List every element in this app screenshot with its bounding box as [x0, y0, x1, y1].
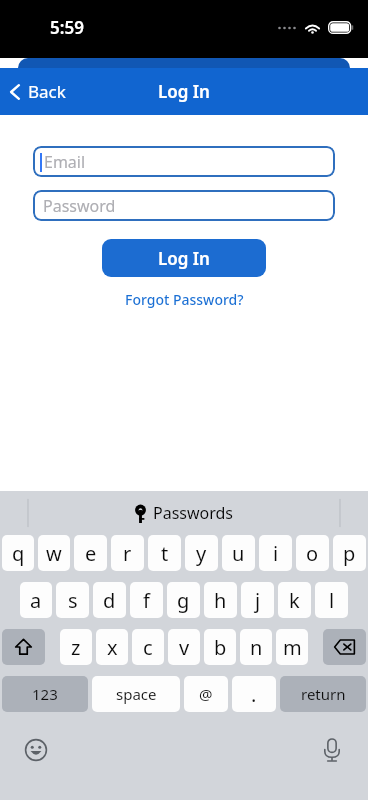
staticText: Passwords [153, 502, 234, 524]
button[interactable]: n [240, 629, 272, 665]
staticText: r [123, 540, 132, 567]
staticText: x [107, 634, 118, 661]
staticText: @ [199, 684, 213, 704]
staticText: g [177, 587, 190, 614]
button[interactable]: @ [184, 676, 228, 712]
button[interactable]: return [280, 676, 366, 712]
staticText: v [179, 634, 190, 661]
staticText: j [255, 587, 261, 614]
button[interactable]: 123 [2, 676, 88, 712]
staticText: k [289, 587, 300, 614]
button[interactable]: k [278, 582, 311, 618]
button[interactable]: Forgot Password? [117, 287, 252, 312]
button[interactable]: v [168, 629, 200, 665]
staticText: u [232, 540, 245, 567]
staticText: m [283, 634, 302, 661]
button[interactable]: p [333, 535, 366, 571]
staticText: return [301, 684, 346, 704]
button[interactable]: t [148, 535, 181, 571]
button[interactable]: Log In [102, 239, 266, 277]
button[interactable]: l [315, 582, 348, 618]
button[interactable]: m [276, 629, 308, 665]
button[interactable]: s [56, 582, 89, 618]
staticText: l [329, 587, 335, 614]
button[interactable]: Shift [2, 629, 45, 665]
button[interactable]: y [185, 535, 218, 571]
button[interactable]: x [96, 629, 128, 665]
staticText: a [30, 587, 42, 614]
button[interactable]: Dictation [314, 732, 350, 768]
staticText: z [71, 634, 81, 661]
staticText: w [46, 540, 62, 567]
button[interactable]: z [60, 629, 92, 665]
staticText: n [250, 634, 263, 661]
button[interactable]: r [111, 535, 144, 571]
button[interactable]: a [20, 582, 52, 618]
button[interactable]: space [92, 676, 180, 712]
staticText: Back [28, 80, 66, 103]
staticText: s [68, 587, 78, 614]
button[interactable]: . [232, 676, 276, 712]
button[interactable]: Email [33, 146, 335, 177]
staticText: Log In [158, 247, 210, 270]
button[interactable]: g [167, 582, 200, 618]
staticText: 5:59 [50, 16, 84, 39]
staticText: f [143, 587, 150, 614]
button[interactable]: d [93, 582, 126, 618]
staticText: Email [44, 151, 86, 173]
button[interactable]: q [2, 535, 34, 571]
staticText: Log In [158, 80, 210, 103]
button[interactable]: h [204, 582, 237, 618]
staticText: b [214, 634, 227, 661]
staticText: o [306, 540, 319, 567]
staticText: t [161, 540, 169, 567]
button[interactable]: Emoji [18, 732, 54, 768]
staticText: i [273, 540, 279, 567]
staticText: y [196, 540, 207, 567]
button[interactable]: j [241, 582, 274, 618]
staticText: Forgot Password? [125, 290, 244, 309]
staticText: space [116, 684, 157, 704]
button[interactable]: Password [33, 190, 335, 221]
button[interactable]: i [259, 535, 292, 571]
staticText: Password [43, 195, 116, 217]
staticText: . [251, 681, 257, 708]
button[interactable]: u [222, 535, 255, 571]
staticText: e [85, 540, 97, 567]
button[interactable]: Passwords [124, 498, 244, 528]
button[interactable]: w [38, 535, 70, 571]
button[interactable]: Backspace [323, 629, 366, 665]
button[interactable]: Back [0, 74, 76, 109]
button[interactable]: o [296, 535, 329, 571]
button[interactable]: e [74, 535, 107, 571]
staticText: q [12, 540, 25, 567]
button[interactable]: c [132, 629, 164, 665]
staticText: c [143, 634, 153, 661]
staticText: d [103, 587, 116, 614]
staticText: h [214, 587, 227, 614]
button[interactable]: f [130, 582, 163, 618]
staticText: p [343, 540, 356, 567]
staticText: 123 [32, 684, 58, 704]
button[interactable]: b [204, 629, 236, 665]
